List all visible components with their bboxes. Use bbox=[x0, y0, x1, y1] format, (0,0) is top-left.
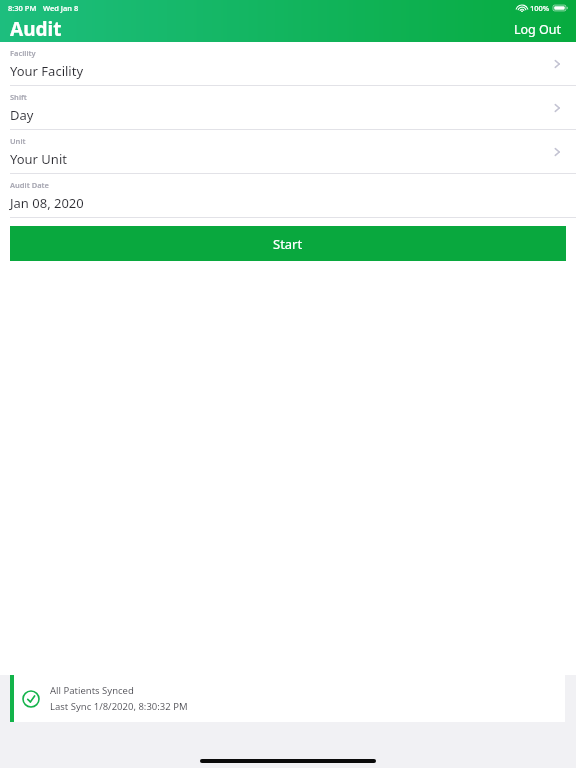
staticText: All Patients Synced bbox=[50, 684, 134, 697]
staticText: Jan 08, 2020 bbox=[10, 194, 84, 212]
staticText: Facility bbox=[10, 48, 36, 58]
staticText: Audit Date bbox=[10, 180, 49, 190]
staticText: Unit bbox=[10, 136, 26, 146]
staticText: Your Facility bbox=[10, 62, 84, 80]
staticText: Log Out bbox=[514, 21, 562, 38]
staticText: 8:30 PM bbox=[8, 3, 37, 13]
staticText: 100% bbox=[530, 3, 550, 13]
staticText: Audit bbox=[10, 16, 62, 42]
other: Select Facility bbox=[548, 55, 566, 73]
button[interactable]: All Patients Synced bbox=[10, 675, 565, 722]
staticText: Shift bbox=[10, 92, 27, 102]
button[interactable]: Shift bbox=[0, 86, 576, 130]
button[interactable]: Audit Date bbox=[0, 174, 576, 218]
staticText: Day bbox=[10, 106, 34, 124]
other: Select Shift bbox=[548, 99, 566, 117]
button[interactable]: Unit bbox=[0, 130, 576, 174]
staticText: Wed Jan 8 bbox=[43, 3, 79, 13]
button[interactable]: Start bbox=[10, 226, 566, 261]
staticText: Your Unit bbox=[10, 150, 67, 168]
staticText: Last Sync 1/8/2020, 8:30:32 PM bbox=[50, 700, 188, 713]
other: Select Unit bbox=[548, 143, 566, 161]
button[interactable]: Facility bbox=[0, 42, 576, 86]
button[interactable]: Log Out bbox=[510, 18, 566, 41]
staticText: Start bbox=[273, 235, 303, 253]
